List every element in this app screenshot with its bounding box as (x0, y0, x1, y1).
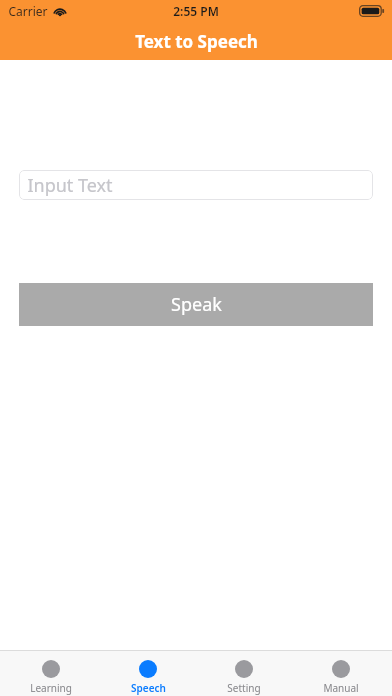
button[interactable]: Manual (296, 653, 386, 695)
staticText: Manual (323, 681, 359, 695)
staticText: 2:55 PM (173, 3, 219, 19)
staticText: Learning (30, 681, 72, 695)
button[interactable]: Speech (103, 653, 193, 695)
button[interactable]: Speak (19, 283, 373, 326)
button[interactable]: Input Text (19, 170, 373, 200)
staticText: Carrier (8, 3, 48, 19)
staticText: Speak (171, 292, 222, 317)
staticText: Text to Speech (135, 30, 258, 53)
staticText: Speech (131, 681, 166, 695)
button[interactable]: Learning (6, 653, 96, 695)
staticText: Setting (227, 681, 261, 695)
button[interactable]: Setting (199, 653, 289, 695)
staticText: Input Text (27, 173, 113, 198)
